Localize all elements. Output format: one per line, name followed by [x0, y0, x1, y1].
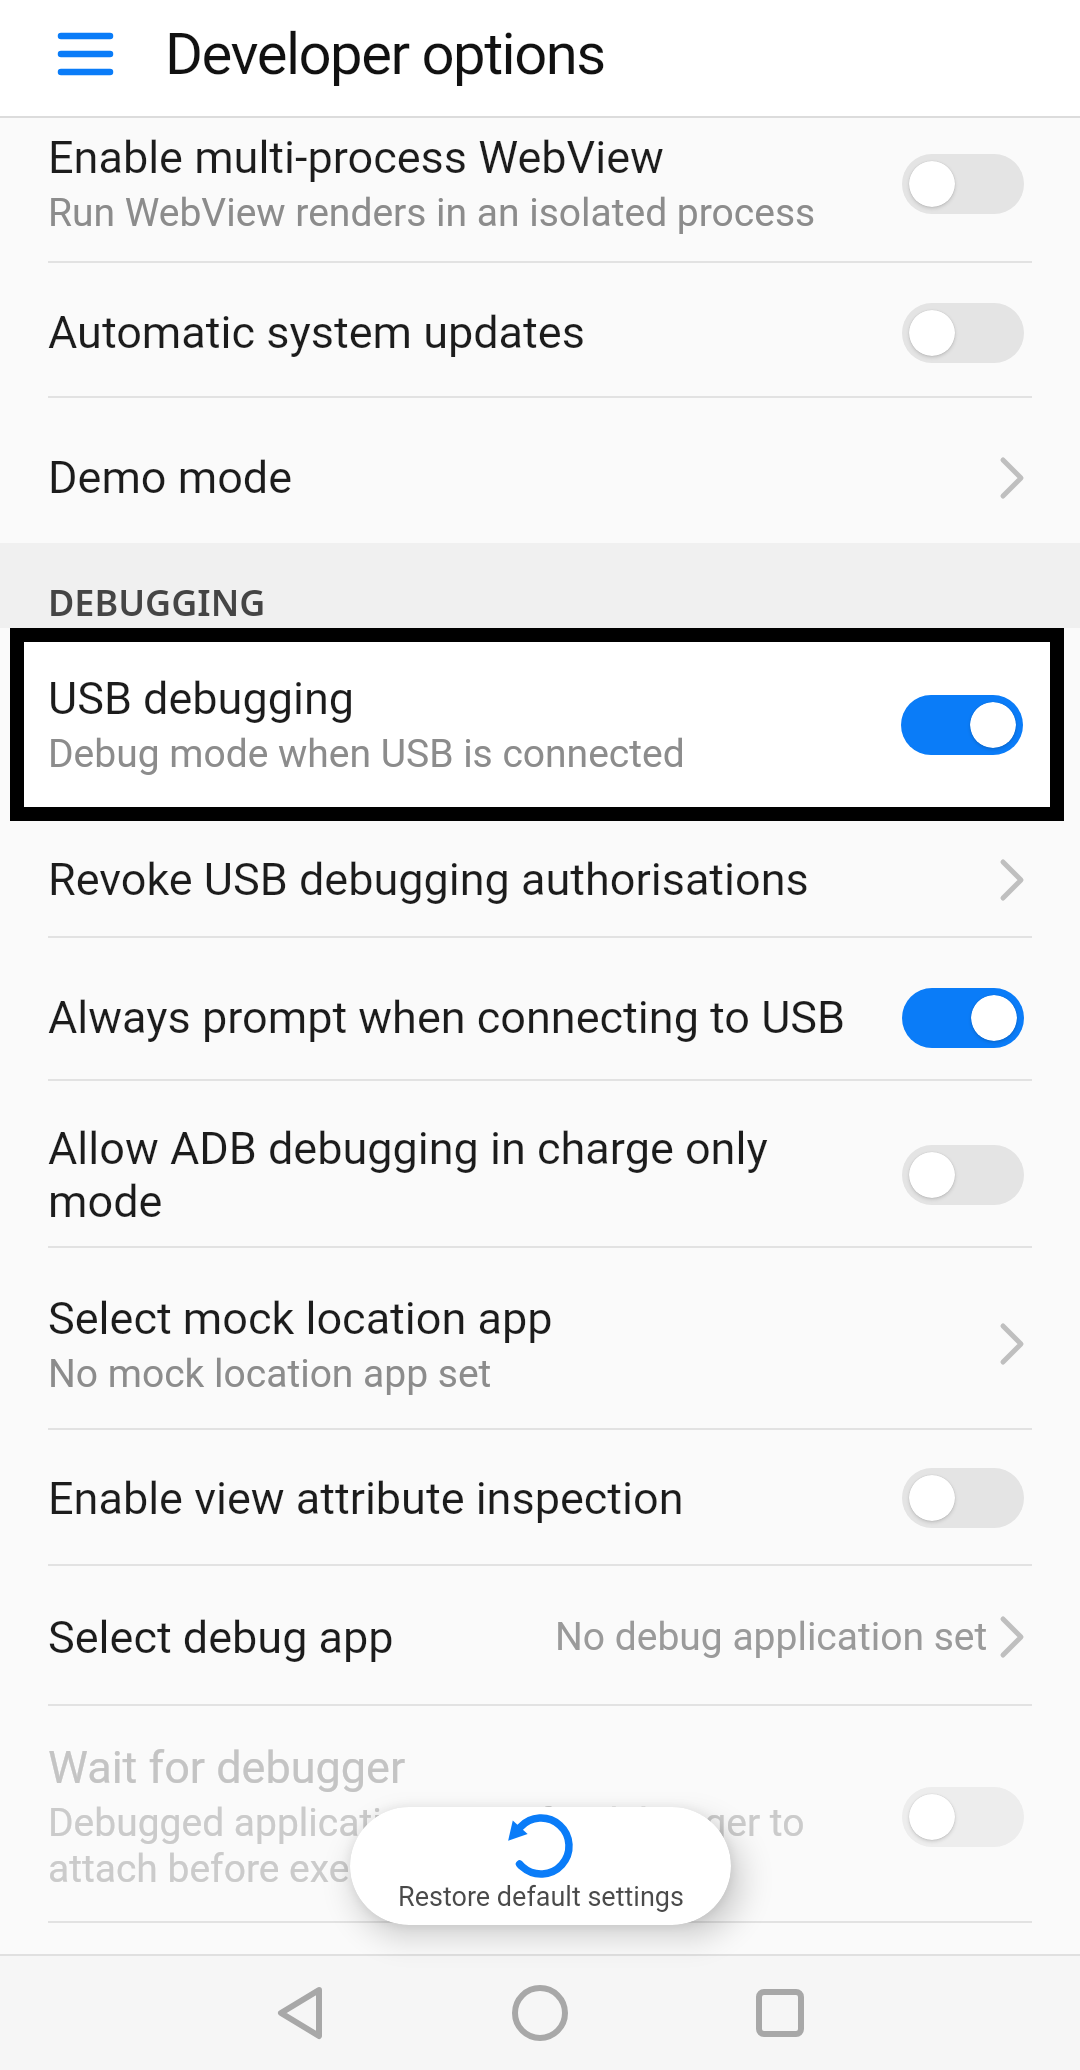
button[interactable]: Enable multi-process WebView: [0, 118, 1080, 263]
staticText: Select debug app: [48, 1611, 555, 1664]
button[interactable]: [180, 1956, 420, 2070]
staticText: USB debugging: [48, 672, 355, 725]
button[interactable]: USB debugging: [10, 628, 1064, 821]
button[interactable]: [902, 303, 1024, 363]
button[interactable]: Revoke USB debugging authorisations: [0, 821, 1080, 938]
staticText: Automatic system updates: [48, 306, 902, 359]
button[interactable]: [902, 1468, 1024, 1528]
button[interactable]: Allow ADB debugging in charge only mode: [0, 1081, 1080, 1248]
staticText: Select mock location app: [48, 1292, 1000, 1345]
staticText: Restore default settings: [398, 1881, 684, 1913]
staticText: No debug application set: [555, 1614, 988, 1660]
button[interactable]: [420, 1956, 660, 2070]
staticText: Revoke USB debugging authorisations: [48, 853, 1000, 906]
button[interactable]: [902, 1145, 1024, 1205]
staticText: Enable view attribute inspection: [48, 1472, 902, 1525]
button[interactable]: [902, 1787, 1024, 1847]
staticText: Enable multi-process WebView: [48, 131, 902, 184]
button[interactable]: [902, 988, 1024, 1048]
button[interactable]: [660, 1956, 900, 2070]
staticText: Always prompt when connecting to USB: [48, 991, 902, 1044]
staticText: Debug mode when USB is connected: [48, 731, 685, 777]
button[interactable]: [57, 26, 113, 82]
staticText: No mock location app set: [48, 1351, 492, 1397]
button[interactable]: Enable view attribute inspection: [0, 1430, 1080, 1566]
button[interactable]: Wait for debugger: [0, 1706, 1080, 1923]
button[interactable]: Select mock location app: [0, 1248, 1080, 1430]
staticText: Developer options: [165, 20, 605, 88]
staticText: Demo mode: [48, 451, 1000, 504]
button[interactable]: Automatic system updates: [0, 263, 1080, 398]
staticText: Run WebView renders in an isolated proce…: [48, 190, 816, 236]
button[interactable]: Always prompt when connecting to USB: [0, 938, 1080, 1081]
staticText: Debugged application waits for debugger …: [48, 1800, 902, 1892]
button[interactable]: [901, 695, 1023, 755]
staticText: Wait for debugger: [48, 1741, 902, 1794]
button[interactable]: Demo mode: [0, 398, 1080, 543]
button[interactable]: Select debug app: [0, 1566, 1080, 1706]
button[interactable]: [902, 154, 1024, 214]
staticText: DEBUGGING: [48, 578, 266, 627]
staticText: Allow ADB debugging in charge only mode: [48, 1122, 817, 1228]
